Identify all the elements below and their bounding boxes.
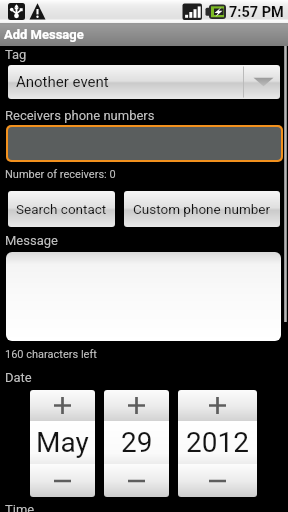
button[interactable]: Decrement — [178, 464, 257, 497]
staticText: Custom phone number — [133, 201, 271, 217]
button[interactable]: Custom phone number — [124, 191, 280, 227]
button[interactable] — [6, 252, 281, 341]
staticText: 29 — [121, 426, 153, 459]
staticText: Receivers phone numbers — [5, 108, 155, 123]
staticText: 160 characters left — [5, 348, 97, 361]
staticText: Message — [5, 233, 58, 248]
button[interactable]: Search contact — [8, 191, 115, 227]
staticText: 2012 — [186, 426, 249, 459]
staticText: Date — [5, 370, 32, 385]
button[interactable]: Another event — [8, 65, 280, 99]
staticText: Add Message — [4, 27, 84, 42]
staticText: Search contact — [16, 201, 107, 217]
button[interactable] — [8, 127, 281, 160]
button[interactable]: Increment — [178, 390, 257, 421]
button[interactable]: Decrement — [30, 464, 95, 497]
staticText: Time — [5, 502, 35, 512]
staticText: Tag — [5, 47, 27, 62]
button[interactable]: Decrement — [104, 464, 169, 497]
staticText: 7:57 PM — [229, 4, 284, 21]
button[interactable]: Increment — [104, 390, 169, 421]
staticText: Another event — [16, 73, 243, 91]
staticText: Number of receivers: 0 — [5, 168, 116, 181]
staticText: May — [36, 426, 89, 459]
button[interactable]: Increment — [30, 390, 95, 421]
